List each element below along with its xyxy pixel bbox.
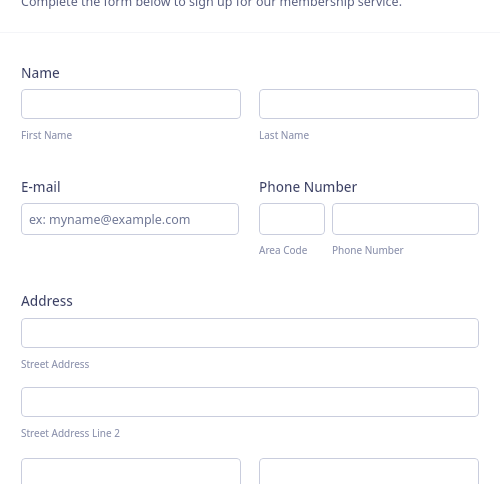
button[interactable]: First Name (21, 89, 241, 119)
staticText: Area Code (259, 243, 308, 257)
staticText: Phone Number (259, 178, 358, 196)
staticText: Complete the form below to sign up for o… (21, 0, 402, 10)
staticText: Street Address (21, 357, 90, 371)
staticText: Phone Number (332, 243, 404, 257)
button[interactable]: Street Address (21, 318, 479, 348)
button[interactable]: State (259, 458, 479, 484)
staticText: Address (21, 292, 73, 310)
staticText: First Name (21, 128, 73, 142)
button[interactable]: Last Name (259, 89, 479, 119)
button[interactable]: E-mail address (21, 203, 239, 235)
button[interactable]: Area Code (259, 203, 325, 235)
button[interactable]: Phone Number (332, 203, 479, 235)
staticText: Name (21, 64, 60, 82)
staticText: Last Name (259, 128, 310, 142)
button[interactable]: City (21, 458, 241, 484)
staticText: E-mail (21, 178, 61, 196)
button[interactable]: Street Address Line 2 (21, 387, 479, 417)
staticText: Street Address Line 2 (21, 426, 120, 440)
staticText: ex: myname@example.com (29, 211, 191, 228)
